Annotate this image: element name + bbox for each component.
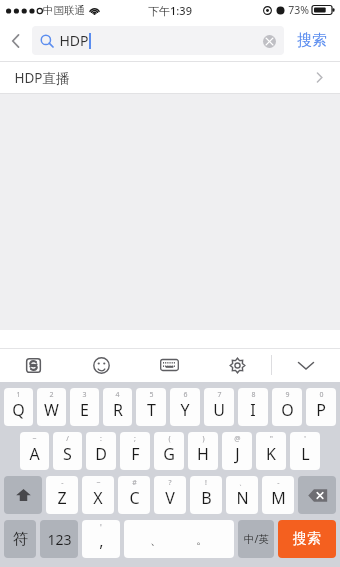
button[interactable]: Clear (258, 30, 280, 52)
button[interactable]: 3 (70, 388, 99, 426)
staticText: ' (100, 522, 102, 533)
staticText: 、 (239, 478, 246, 487)
button[interactable]: @ (222, 432, 252, 470)
staticText: HDP直播 (14, 69, 70, 87)
staticText: / (66, 434, 69, 444)
staticText: T (147, 399, 156, 421)
staticText: 6 (183, 390, 188, 400)
staticText: B (201, 487, 212, 509)
button[interactable]: - (262, 476, 294, 514)
staticText: ? (168, 478, 172, 488)
staticText: ; (134, 434, 136, 444)
staticText: @ (234, 434, 241, 444)
staticText: , (99, 530, 104, 552)
button[interactable]: 搜索 (284, 20, 340, 61)
staticText: 2 (49, 390, 54, 400)
staticText: S (63, 443, 72, 465)
staticText: 中/英 (244, 532, 269, 546)
button[interactable]: " (256, 432, 286, 470)
button[interactable]: ' (290, 432, 320, 470)
button[interactable]: 中/英 (238, 520, 274, 558)
button[interactable]: 1 (4, 388, 33, 426)
button[interactable]: Hide keyboard (272, 348, 340, 382)
staticText: 5 (149, 390, 154, 400)
staticText: ~ (96, 478, 101, 488)
button[interactable]: Back (0, 20, 32, 61)
staticText: 、 (150, 532, 162, 547)
button[interactable]: 4 (103, 388, 132, 426)
staticText: C (129, 487, 140, 509)
staticText: Y (180, 399, 190, 421)
button[interactable]: 0 (306, 388, 336, 426)
button[interactable]: ? (154, 476, 186, 514)
staticText: 0 (319, 390, 324, 400)
button[interactable]: 8 (238, 388, 268, 426)
button[interactable]: Shift (4, 476, 42, 514)
button[interactable]: 7 (204, 388, 234, 426)
button[interactable]: 搜索 (278, 520, 336, 558)
button[interactable]: 9 (272, 388, 302, 426)
staticText: ( (168, 434, 171, 444)
staticText: K (266, 443, 276, 465)
button[interactable]: # (118, 476, 150, 514)
staticText: ' (304, 434, 306, 444)
button[interactable]: ! (190, 476, 222, 514)
staticText: 搜索 (293, 530, 321, 548)
button[interactable]: - (46, 476, 78, 514)
button[interactable]: ' (82, 520, 120, 558)
staticText: 搜索 (297, 31, 327, 50)
button[interactable]: Sogou input (0, 348, 67, 382)
staticText: Q (12, 399, 25, 421)
button[interactable]: 、 (226, 476, 258, 514)
button[interactable]: Keyboard layout (135, 348, 203, 382)
staticText: H (197, 443, 209, 465)
button[interactable]: Emoji (67, 348, 135, 382)
staticText: N (236, 487, 249, 509)
staticText: R (113, 399, 123, 421)
button[interactable]: 2 (37, 388, 66, 426)
staticText: A (29, 443, 40, 465)
staticText: 123 (47, 530, 72, 549)
button[interactable]: 123 (40, 520, 78, 558)
staticText: 8 (251, 390, 256, 400)
button[interactable]: ; (120, 432, 150, 470)
staticText: W (44, 399, 59, 421)
button[interactable]: / (53, 432, 82, 470)
staticText: D (95, 443, 107, 465)
button[interactable]: ) (188, 432, 218, 470)
button[interactable]: Backspace (298, 476, 336, 514)
staticText: ) (202, 434, 205, 444)
button[interactable]: ~ (20, 432, 49, 470)
staticText: # (132, 478, 137, 488)
button[interactable]: ~ (82, 476, 114, 514)
button[interactable]: HDP (32, 26, 284, 55)
staticText: 3 (82, 390, 87, 400)
staticText: U (213, 399, 225, 421)
staticText: P (316, 399, 326, 421)
staticText: 中国联通 (43, 4, 85, 17)
staticText: 4 (115, 390, 120, 400)
staticText: J (235, 443, 240, 465)
staticText: : (100, 434, 102, 444)
button[interactable]: HDP直播 (0, 62, 340, 93)
staticText: ~ (32, 434, 37, 444)
button[interactable]: Settings (203, 348, 271, 382)
button[interactable]: Space (124, 520, 234, 558)
staticText: 。 (196, 532, 208, 547)
staticText: 符 (13, 530, 28, 549)
button[interactable]: 6 (170, 388, 200, 426)
button[interactable]: 符 (4, 520, 36, 558)
staticText: 7 (217, 390, 222, 400)
staticText: - (61, 478, 64, 488)
staticText: G (163, 443, 175, 465)
staticText: V (165, 487, 175, 509)
button[interactable]: : (86, 432, 116, 470)
staticText: M (271, 487, 286, 509)
button[interactable]: ( (154, 432, 184, 470)
staticText: E (80, 399, 89, 421)
button[interactable]: 5 (136, 388, 166, 426)
staticText: 下午1:39 (148, 3, 192, 18)
staticText: - (277, 478, 280, 488)
staticText: 1 (16, 390, 21, 400)
staticText: HDP (59, 31, 89, 50)
